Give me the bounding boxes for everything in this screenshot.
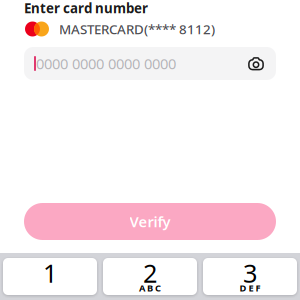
staticText: 2 — [143, 256, 157, 290]
staticText: 3 — [243, 256, 257, 290]
button[interactable]: 2 — [103, 258, 197, 295]
staticText: Verify — [129, 212, 170, 231]
button[interactable]: 1 — [3, 258, 97, 295]
staticText: A B C — [139, 282, 161, 294]
staticText: 1 — [43, 256, 57, 290]
staticText: D E F — [239, 282, 260, 294]
staticText: 0000 0000 0000 0000 — [36, 54, 176, 73]
staticText: MASTERCARD(**** 8112) — [59, 20, 215, 38]
button[interactable]: Scan card with camera — [248, 47, 264, 80]
button[interactable]: 3 — [203, 258, 297, 295]
button[interactable]: 0000 0000 0000 0000 — [34, 47, 248, 80]
button[interactable]: Verify — [24, 203, 276, 240]
staticText: Enter card number — [24, 0, 148, 17]
